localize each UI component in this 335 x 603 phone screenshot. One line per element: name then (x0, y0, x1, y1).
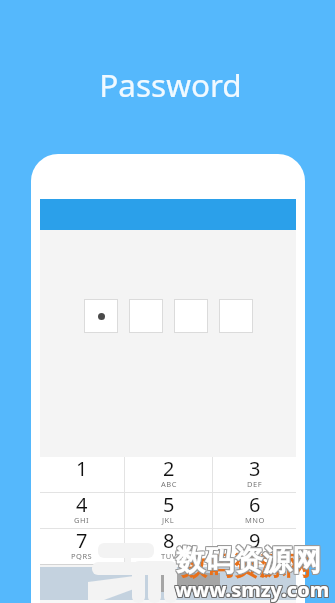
staticText: www.smzy.com (175, 576, 330, 603)
staticText: 4 (76, 491, 88, 518)
staticText: www.smzy.com (175, 577, 330, 603)
staticText: 9 (249, 527, 261, 554)
button[interactable]: 5 (125, 493, 212, 528)
button[interactable] (85, 300, 117, 332)
staticText: 数码资源网 (176, 543, 321, 580)
staticText: 数码资源网 (181, 550, 311, 583)
staticText: 3 (249, 455, 261, 482)
staticText: 2 (163, 455, 175, 482)
staticText: www.smzy.com (175, 575, 330, 602)
staticText: TUV (161, 551, 177, 561)
staticText: Password (3, 63, 335, 106)
button[interactable]: 2 (125, 457, 212, 492)
staticText: 数码资源网 (177, 541, 322, 578)
staticText: 数码资源网 (177, 542, 322, 579)
button[interactable]: 1 (40, 457, 124, 492)
staticText: www.smzy.com (176, 576, 331, 603)
staticText: MNO (245, 515, 265, 525)
staticText: 1 (76, 455, 88, 482)
staticText: www.smzy.com (174, 577, 329, 603)
staticText: 数码资源网 (176, 541, 321, 578)
button[interactable]: 6 (213, 493, 296, 528)
button[interactable]: 9 (213, 529, 296, 564)
staticText: 7 (76, 527, 88, 554)
staticText: 数码资源网 (175, 543, 320, 580)
staticText: ABC (161, 479, 177, 489)
button[interactable]: 4 (40, 493, 124, 528)
button[interactable]: 3 (213, 457, 296, 492)
staticText: www.smzy.com (174, 575, 329, 602)
staticText: GHI (74, 515, 90, 525)
staticText: 5 (163, 491, 175, 518)
staticText: 数码资源网 (176, 542, 321, 579)
staticText: www.smzy.com (176, 575, 331, 602)
staticText: 数码资源网 (175, 541, 320, 578)
staticText: PQRS (71, 551, 93, 561)
staticText: 数码资源网 (177, 543, 322, 580)
staticText: JKL (162, 515, 175, 525)
staticText: 数码资源网 (175, 542, 320, 579)
staticText: 8 (163, 527, 175, 554)
staticText: WXYZ (244, 551, 266, 561)
staticText: 6 (249, 491, 261, 518)
staticText: www.smzy.com (176, 577, 331, 603)
staticText: DEF (247, 479, 263, 489)
button[interactable]: 7 (40, 529, 124, 564)
staticText: www.smzy.com (174, 576, 329, 603)
button[interactable]: 8 (125, 529, 212, 564)
